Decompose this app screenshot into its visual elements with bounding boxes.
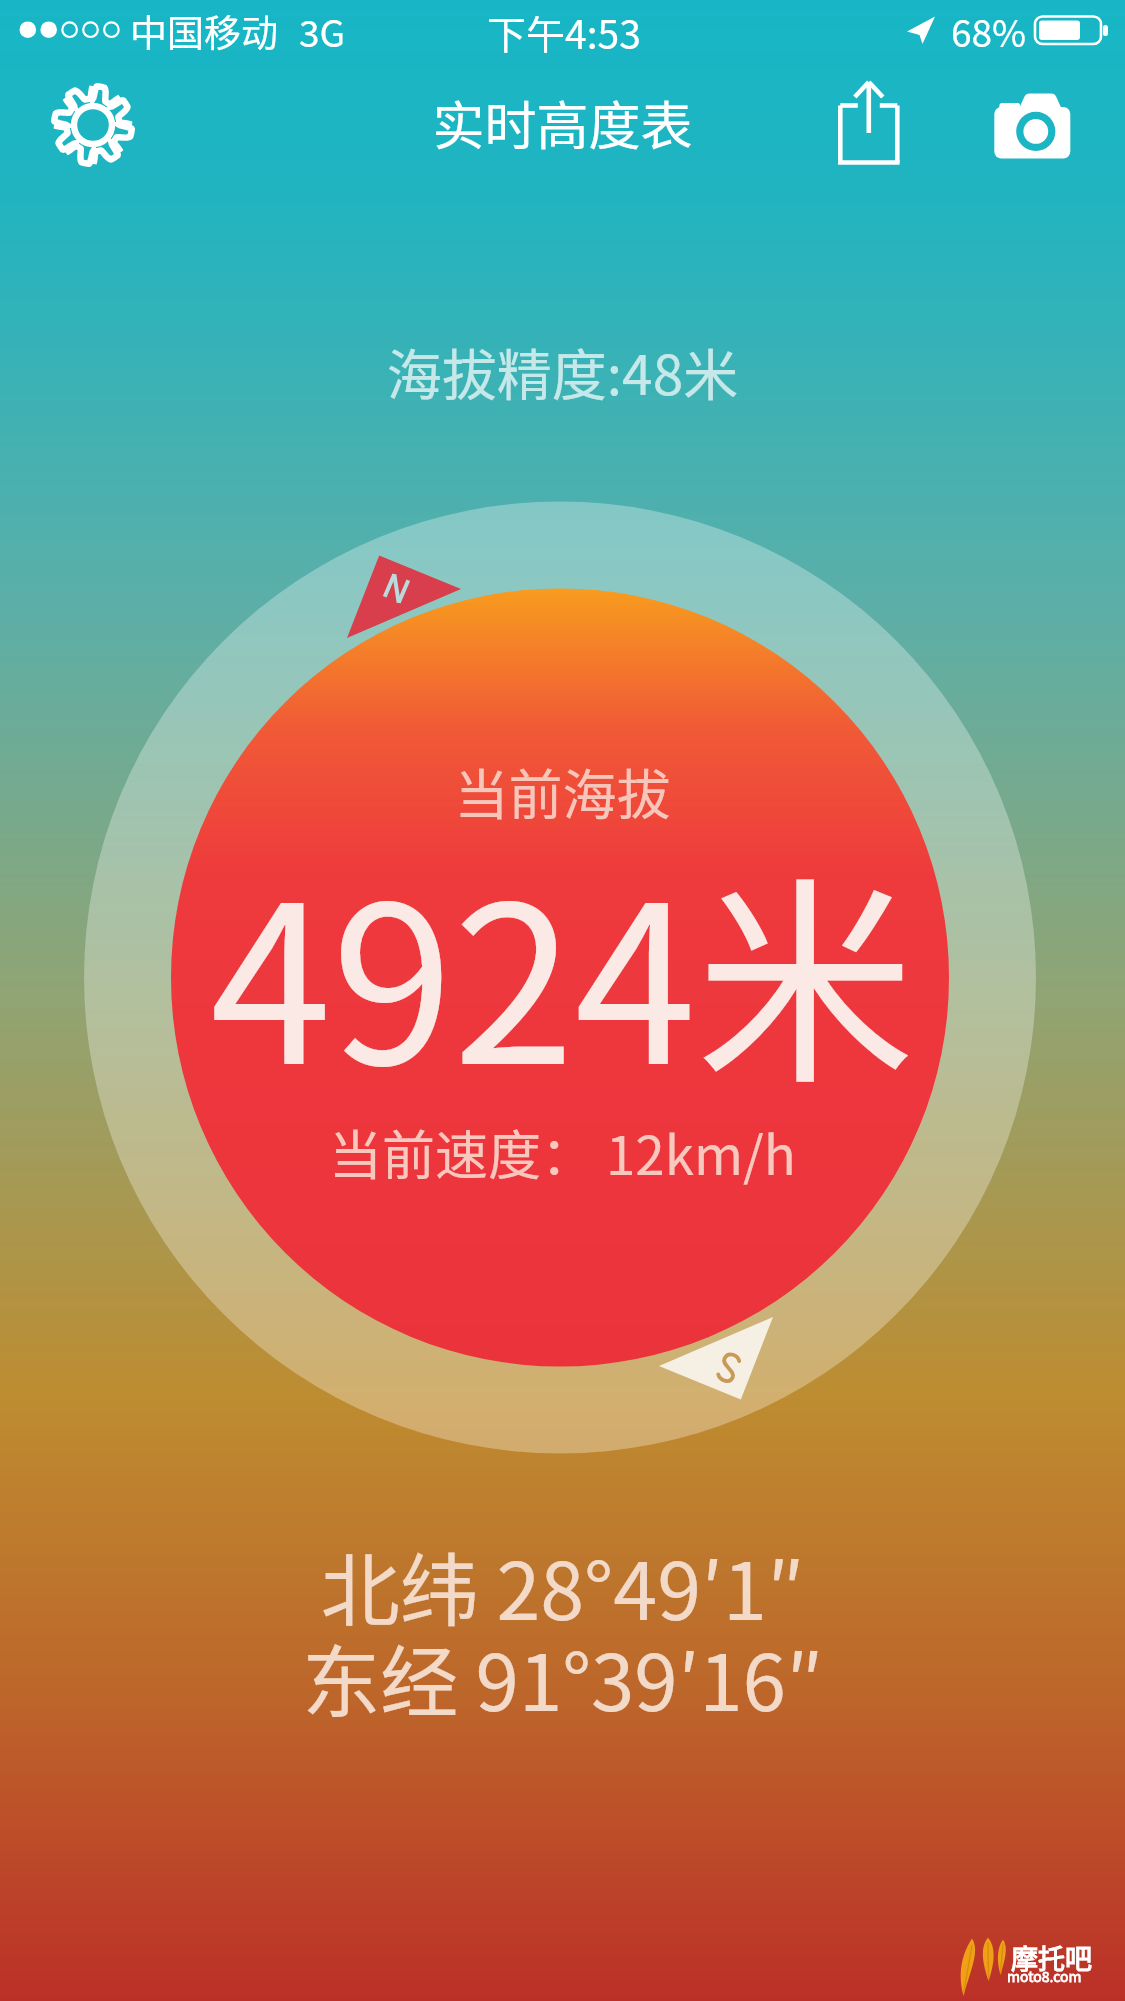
staticText: 海拔精度:48米 bbox=[0, 331, 1125, 411]
staticText: 实时高度表 bbox=[0, 85, 1125, 160]
staticText: 68% bbox=[951, 4, 1027, 58]
staticText: 摩托吧 bbox=[1011, 1938, 1092, 1977]
button[interactable]: Settings bbox=[45, 77, 141, 173]
staticText: 当前速度： 12km/h bbox=[0, 1114, 1125, 1191]
button[interactable]: Camera bbox=[992, 94, 1072, 174]
staticText: 3G bbox=[299, 4, 346, 58]
staticText: 4924米 bbox=[0, 810, 1125, 1127]
button[interactable]: Share bbox=[838, 78, 900, 140]
staticText: 北纬 28°49′1″ bbox=[0, 1528, 1125, 1642]
staticText: moto8.com bbox=[1007, 1966, 1082, 1986]
staticText: 当前海拔 bbox=[0, 752, 1125, 830]
staticText: 下午4:53 bbox=[487, 4, 641, 60]
staticText: 东经 91°39′16″ bbox=[0, 1621, 1125, 1734]
staticText: 中国移动 bbox=[130, 4, 278, 58]
